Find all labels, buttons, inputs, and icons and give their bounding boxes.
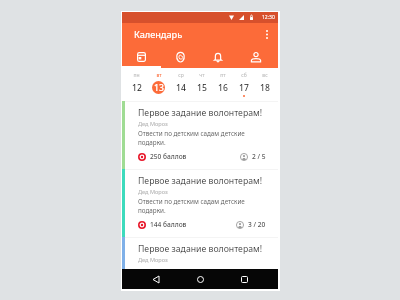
staticText: Дед Мороз — [138, 188, 168, 196]
staticText: Первое задание волонтерам! — [138, 175, 263, 187]
button[interactable]: вс — [254, 68, 275, 101]
button[interactable] — [122, 169, 278, 237]
staticText: сб — [241, 72, 247, 79]
staticText: чт — [199, 72, 205, 79]
button[interactable]: Home — [190, 269, 210, 289]
staticText: 12:30 — [262, 14, 275, 21]
button[interactable]: Notifications — [199, 46, 237, 66]
button[interactable]: ср — [169, 68, 191, 101]
button[interactable]: Back — [146, 269, 166, 289]
staticText: 144 баллов — [150, 220, 187, 229]
staticText: Дед Мороз — [138, 256, 168, 264]
button[interactable]: Recents — [234, 269, 254, 289]
staticText: Первое задание волонтерам! — [138, 107, 263, 119]
button[interactable]: Volunteer — [161, 46, 199, 66]
staticText: 16 — [218, 82, 228, 94]
staticText: 17 — [239, 82, 249, 94]
staticText: пт — [220, 72, 226, 79]
staticText: 13 — [154, 82, 164, 94]
button[interactable]: чт — [191, 68, 212, 101]
staticText: Отвести по детским садам детские подарки… — [138, 129, 266, 147]
staticText: 14 — [176, 82, 186, 94]
button[interactable] — [122, 237, 278, 269]
button[interactable]: More options — [256, 23, 278, 46]
staticText: вс — [262, 72, 268, 79]
staticText: вт — [156, 72, 162, 79]
button[interactable]: Calendar — [122, 46, 161, 66]
button[interactable]: пн — [125, 68, 147, 101]
button[interactable]: сб — [233, 68, 254, 101]
button[interactable]: вт — [147, 68, 169, 101]
staticText: Дед Мороз — [138, 120, 168, 128]
staticText: Первое задание волонтерам! — [138, 243, 263, 255]
staticText: ср — [178, 72, 184, 79]
staticText: 12 — [132, 82, 142, 94]
staticText: 250 баллов — [150, 152, 187, 161]
staticText: Отвести по детским садам детские подарки… — [138, 197, 266, 215]
staticText: 2 / 5 — [252, 152, 266, 161]
button[interactable]: пт — [212, 68, 233, 101]
button[interactable]: Profile — [237, 46, 275, 66]
staticText: пн — [133, 72, 140, 79]
staticText: 18 — [260, 82, 270, 94]
button[interactable] — [122, 101, 278, 169]
staticText: 15 — [197, 82, 207, 94]
staticText: Календарь — [134, 28, 183, 41]
staticText: 3 / 20 — [248, 220, 266, 229]
